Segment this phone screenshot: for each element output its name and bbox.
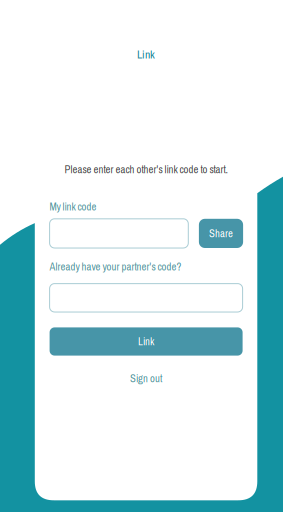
staticText: My link code (50, 199, 97, 214)
button[interactable]: Link (35, 49, 257, 60)
staticText: Sign out (130, 371, 162, 386)
staticText: Please enter each other's link code to s… (64, 162, 227, 177)
staticText: Share (209, 226, 233, 241)
staticText: Link (138, 334, 154, 349)
button[interactable]: Sign out (50, 373, 243, 384)
staticText: Already have your partner's code? (50, 259, 182, 274)
staticText: Link (137, 47, 155, 62)
button[interactable]: Share (199, 219, 243, 248)
button[interactable]: Link (50, 327, 243, 356)
